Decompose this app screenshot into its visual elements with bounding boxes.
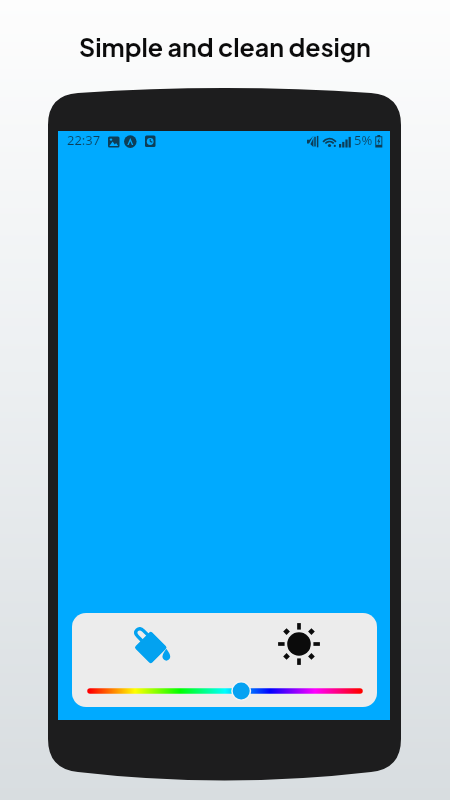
staticText: 22:37 bbox=[67, 131, 101, 149]
staticText: 5% bbox=[354, 131, 373, 149]
button[interactable]: Colour slider bbox=[78, 679, 371, 701]
staticText: Simple and clean design bbox=[79, 31, 371, 62]
button[interactable]: Fill colour bbox=[72, 613, 224, 675]
button[interactable]: Brightness bbox=[224, 613, 377, 675]
